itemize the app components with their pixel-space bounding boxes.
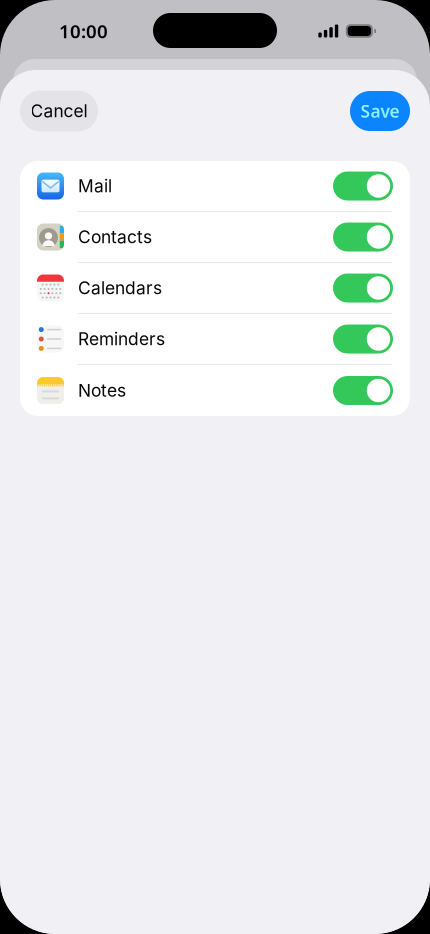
button[interactable]: Mail [20,161,410,212]
button[interactable]: Reminders [333,324,393,353]
button[interactable]: Calendars [20,263,410,314]
staticText: Contacts [78,226,152,247]
staticText: Cancel [30,100,87,121]
button[interactable]: Notes [20,365,410,416]
staticText: Reminders [78,328,165,349]
button[interactable]: Contacts [333,222,393,251]
button[interactable]: Reminders [20,314,410,365]
button[interactable]: Save [350,91,410,131]
button[interactable]: Calendars [333,273,393,302]
staticText: Notes [78,380,126,401]
button[interactable]: Notes [333,376,393,405]
button[interactable]: Mail [333,171,393,200]
staticText: Calendars [78,277,162,298]
button[interactable]: Cancel [20,90,98,131]
staticText: Save [360,99,399,122]
button[interactable]: Contacts [20,212,410,263]
staticText: 10:00 [59,19,108,43]
staticText: Mail [78,175,112,196]
